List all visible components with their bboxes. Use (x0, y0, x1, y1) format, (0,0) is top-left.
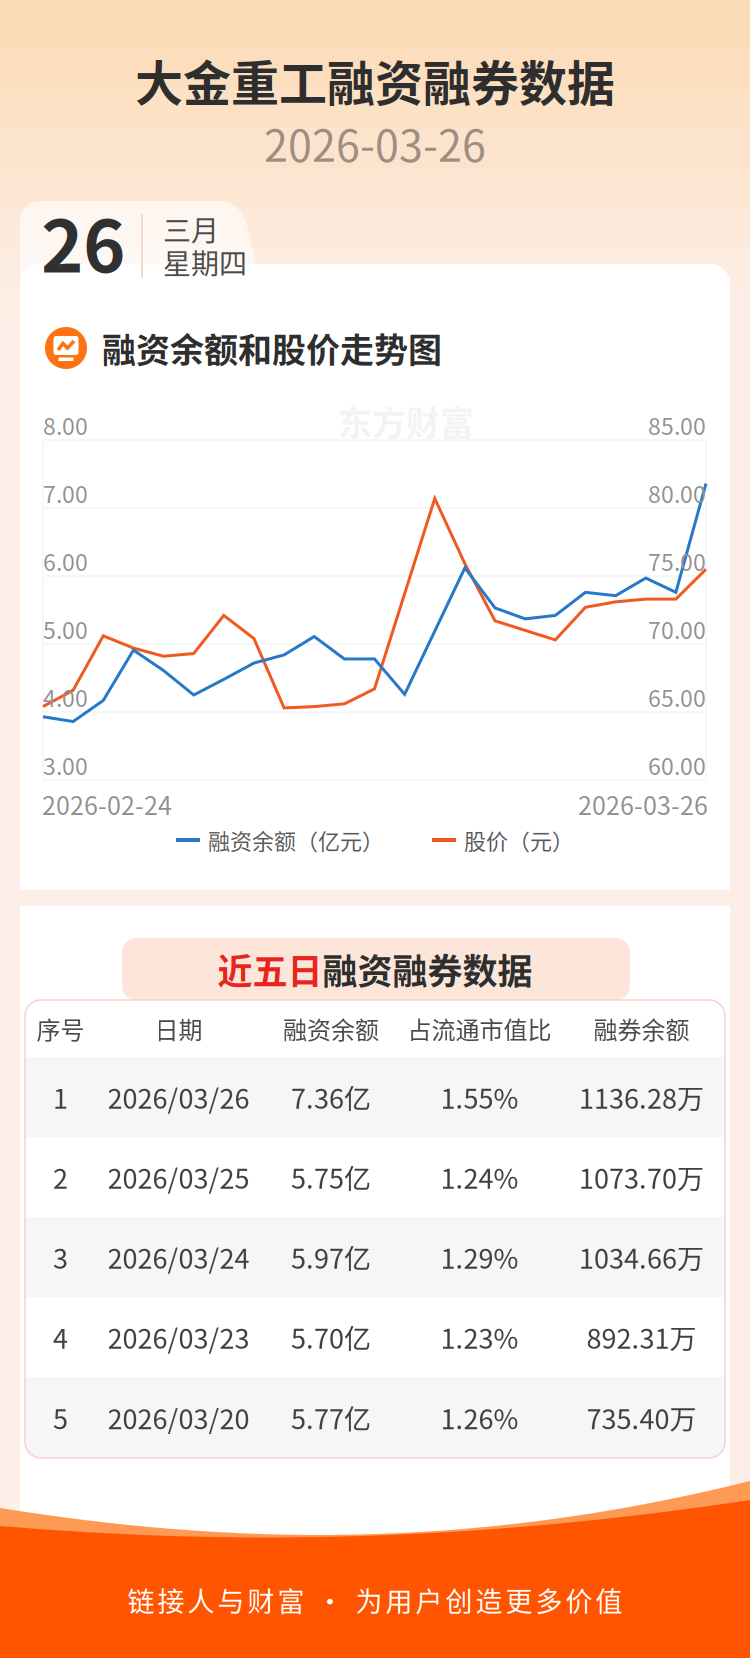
staticText: 融资余额和股价走势图 (102, 323, 442, 373)
staticText: 5.00 (43, 612, 88, 646)
staticText: 占流通市值比 (407, 1011, 551, 1046)
staticText: 2026-03-26 (578, 786, 708, 822)
staticText: 1034.66万 (579, 1237, 704, 1277)
staticText: 70.00 (648, 612, 706, 646)
staticText: 5 (53, 1398, 68, 1437)
staticText: 735.40万 (586, 1398, 696, 1437)
staticText: 7.36亿 (291, 1077, 371, 1117)
staticText: 大金重工融资融券数据 (135, 45, 615, 115)
staticText: 1.24% (440, 1157, 518, 1197)
staticText: 2 (53, 1157, 68, 1197)
staticText: 5.70亿 (291, 1317, 371, 1357)
staticText: 8.00 (43, 408, 88, 442)
staticText: 5.77亿 (291, 1398, 371, 1437)
staticText: 4 (53, 1317, 68, 1357)
staticText: 序号 (36, 1011, 84, 1046)
staticText: 2026/03/20 (107, 1398, 249, 1437)
staticText: 2026-03-26 (264, 112, 486, 174)
staticText: 融资融券数据 (322, 944, 532, 994)
staticText: 5.97亿 (291, 1237, 371, 1277)
staticText: 融资余额 (283, 1011, 379, 1046)
staticText: 2026-02-24 (42, 786, 172, 822)
staticText: 1.23% (440, 1317, 518, 1357)
staticText: 1.55% (440, 1077, 518, 1117)
staticText: 东方财富 (338, 396, 474, 446)
staticText: 三月 (163, 209, 219, 249)
staticText: 6.00 (43, 544, 88, 578)
staticText: 日期 (154, 1011, 202, 1046)
staticText: 80.00 (648, 476, 706, 510)
staticText: 星期四 (163, 242, 247, 282)
staticText: 65.00 (648, 680, 706, 714)
staticText: 2026/03/24 (107, 1237, 249, 1277)
staticText: 1073.70万 (579, 1157, 704, 1197)
staticText: 85.00 (648, 408, 706, 442)
staticText: 4.00 (43, 680, 88, 714)
staticText: 1 (53, 1077, 68, 1117)
staticText: 股价（元） (464, 824, 574, 856)
staticText: 链接人与财富 · 为用户创造更多价值 (127, 1580, 622, 1620)
staticText: 融券余额 (593, 1011, 689, 1046)
staticText: 26 (41, 189, 125, 293)
staticText: 近五日 (217, 944, 322, 994)
staticText: 1136.28万 (579, 1077, 704, 1117)
staticText: 3 (53, 1237, 68, 1277)
staticText: 2026/03/23 (107, 1317, 249, 1357)
staticText: 7.00 (43, 476, 88, 510)
staticText: 75.00 (648, 544, 706, 578)
staticText: 融资余额（亿元） (208, 824, 384, 856)
staticText: 60.00 (648, 748, 706, 782)
staticText: 5.75亿 (291, 1157, 371, 1197)
staticText: 1.29% (440, 1237, 518, 1277)
staticText: 2026/03/25 (107, 1157, 249, 1197)
staticText: 2026/03/26 (107, 1077, 249, 1117)
staticText: 1.26% (440, 1398, 518, 1437)
staticText: 3.00 (43, 748, 88, 782)
staticText: 892.31万 (586, 1317, 696, 1357)
